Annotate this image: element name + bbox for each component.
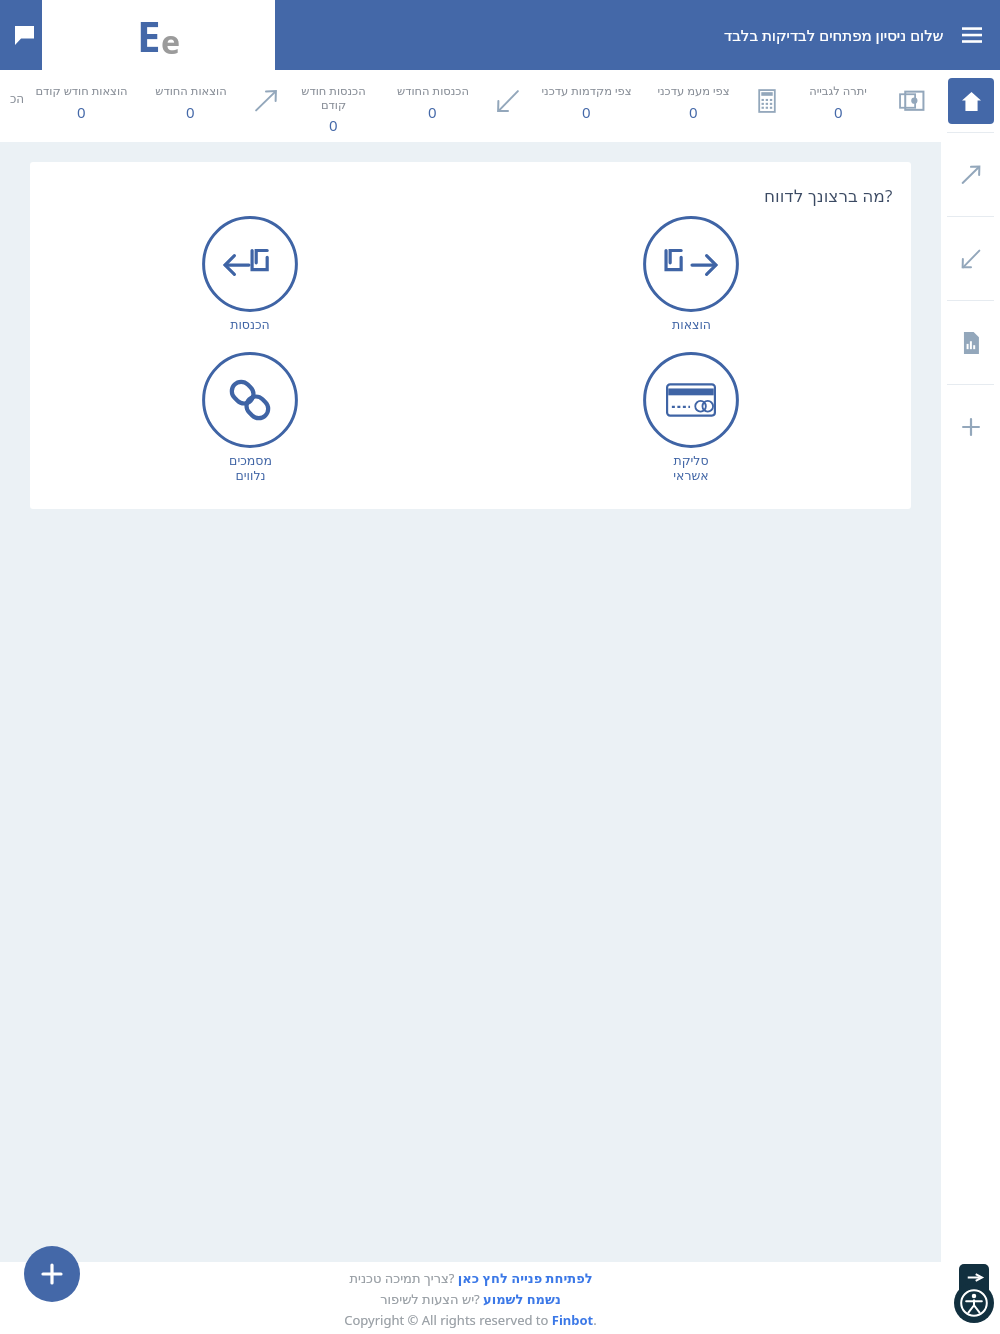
button[interactable]: Add	[24, 1246, 80, 1302]
staticText: הוצאות	[672, 317, 711, 332]
button[interactable]: Home	[948, 78, 994, 124]
button[interactable]: הכנסות החודש	[379, 70, 486, 142]
staticText: סליקת אשראי	[673, 453, 709, 483]
button[interactable]: Metric	[486, 70, 530, 142]
staticText: הכנסות חודש קודם	[301, 83, 366, 112]
staticText: הכ	[10, 92, 25, 106]
staticText: יתרה לגבייה	[809, 83, 867, 99]
staticText: מה ברצונך לדווח?	[764, 184, 893, 207]
button[interactable]: הכנסות חודש קודם	[288, 70, 379, 142]
staticText: צפי מעמ עדכני	[657, 83, 730, 99]
button[interactable]: Outgoing	[941, 133, 1000, 216]
button[interactable]: הוצאות	[641, 214, 741, 334]
button[interactable]: Metric	[744, 70, 790, 142]
button[interactable]: סליקת אשראי	[641, 350, 741, 485]
button[interactable]: צפי מקדמות עדכני	[530, 70, 642, 142]
button[interactable]: הכנסות	[200, 214, 300, 334]
button[interactable]: Incoming	[941, 217, 1000, 300]
button[interactable]: Chat	[7, 18, 41, 52]
staticText: 0	[834, 102, 843, 122]
staticText: הוצאות החודש	[155, 83, 227, 99]
staticText: הוצאות חודש קודם	[35, 83, 128, 99]
button[interactable]: הוצאות החודש	[137, 70, 244, 142]
button[interactable]: Metric	[886, 70, 938, 142]
button[interactable]: צפי מעמ עדכני	[642, 70, 744, 142]
button[interactable]: מסמכים נלווים	[200, 350, 300, 485]
staticText: 0	[428, 102, 437, 122]
staticText: e	[161, 20, 181, 64]
staticText: Copyright © All rights reserved to Finbo…	[344, 1311, 597, 1329]
button[interactable]: Reports	[941, 301, 1000, 384]
button[interactable]: נשמח לשמוע ?יש הצעות לשיפור	[380, 1290, 561, 1308]
staticText: 0	[689, 102, 698, 122]
staticText: מסמכים נלווים	[229, 453, 272, 483]
staticText: הכנסות	[230, 317, 270, 332]
staticText: E	[137, 7, 161, 64]
button[interactable]: Menu	[954, 17, 990, 53]
button[interactable]: New	[941, 385, 1000, 468]
staticText: הכנסות החודש	[397, 83, 469, 99]
button[interactable]: הוצאות חודש קודם	[25, 70, 137, 142]
button[interactable]: Metric	[244, 70, 288, 142]
button[interactable]: יתרה לגבייה	[790, 70, 886, 142]
staticText: 0	[582, 102, 591, 122]
button[interactable]: E	[42, 0, 275, 70]
staticText: 0	[186, 102, 195, 122]
button[interactable]: Accessibility options	[954, 1264, 994, 1330]
staticText: שלום ניסיון מפתחים לבדיקות בלבד	[724, 25, 944, 45]
button[interactable]: לפתיחת פנייה לחץ כאן ?צריך תמיכה טכנית	[349, 1269, 593, 1287]
staticText: 0	[329, 115, 338, 135]
staticText: 0	[77, 102, 86, 122]
staticText: צפי מקדמות עדכני	[541, 83, 632, 99]
